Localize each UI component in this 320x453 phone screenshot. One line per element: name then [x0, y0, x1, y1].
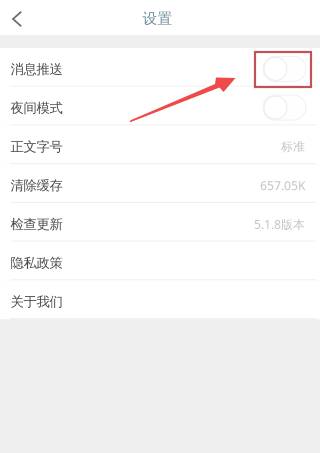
staticText: 夜间模式 — [10, 100, 62, 116]
staticText: 隐私政策 — [10, 255, 62, 271]
staticText: 清除缓存 — [10, 177, 62, 194]
staticText: 检查更新 — [10, 216, 62, 232]
button[interactable]: 关于我们 — [0, 280, 320, 319]
staticText: 消息推送 — [10, 61, 62, 78]
staticText: 正文字号 — [10, 139, 62, 155]
button[interactable]: 检查更新 — [0, 203, 320, 242]
button[interactable]: 夜间模式 — [0, 87, 320, 125]
staticText: 设置 — [142, 9, 172, 27]
staticText: 5.1.8版本 — [254, 216, 305, 232]
staticText: 关于我们 — [10, 294, 62, 310]
button[interactable]: 正文字号 — [0, 125, 320, 164]
button[interactable]: 隐私政策 — [0, 242, 320, 280]
staticText: 标准 — [281, 139, 305, 154]
button[interactable]: 消息推送 — [0, 48, 320, 87]
button[interactable]: Back — [0, 0, 34, 35]
staticText: 657.05K — [260, 178, 305, 193]
button[interactable]: 清除缓存 — [0, 164, 320, 203]
